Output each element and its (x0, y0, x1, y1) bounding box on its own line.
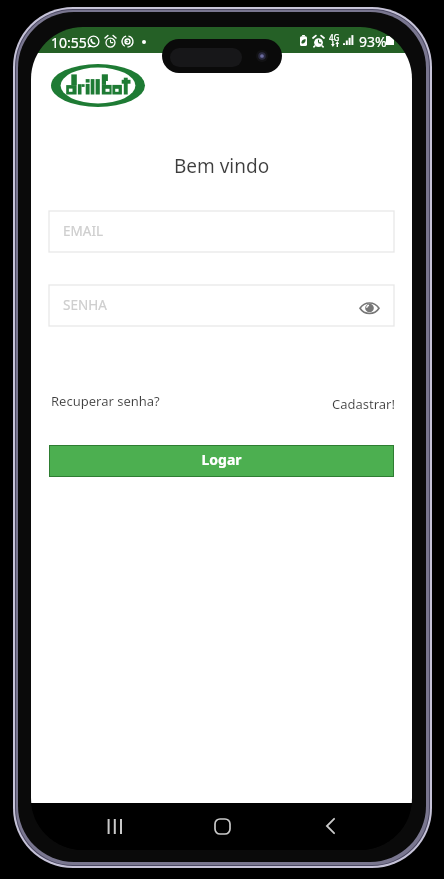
button[interactable]: Logar (50, 446, 393, 476)
staticText: 10:55 (51, 33, 87, 52)
staticText: 93% (359, 32, 387, 51)
staticText: EMAIL (63, 222, 104, 240)
button[interactable]: Home (202, 806, 242, 846)
button[interactable]: SENHA (49, 285, 394, 326)
staticText: 4G (329, 32, 340, 43)
staticText: Cadastrar! (332, 395, 395, 413)
other: Mostrar senha (359, 301, 380, 315)
button[interactable]: Cadastrar! (331, 395, 395, 413)
staticText: Recuperar senha? (51, 392, 160, 410)
staticText: SENHA (63, 296, 107, 314)
button[interactable]: EMAIL (49, 211, 394, 252)
staticText: Logar (50, 450, 393, 469)
button[interactable]: Recents (94, 806, 134, 846)
button[interactable]: Recuperar senha? (51, 392, 160, 410)
button[interactable]: Back (310, 806, 350, 846)
staticText: Bem vindo (31, 153, 412, 179)
